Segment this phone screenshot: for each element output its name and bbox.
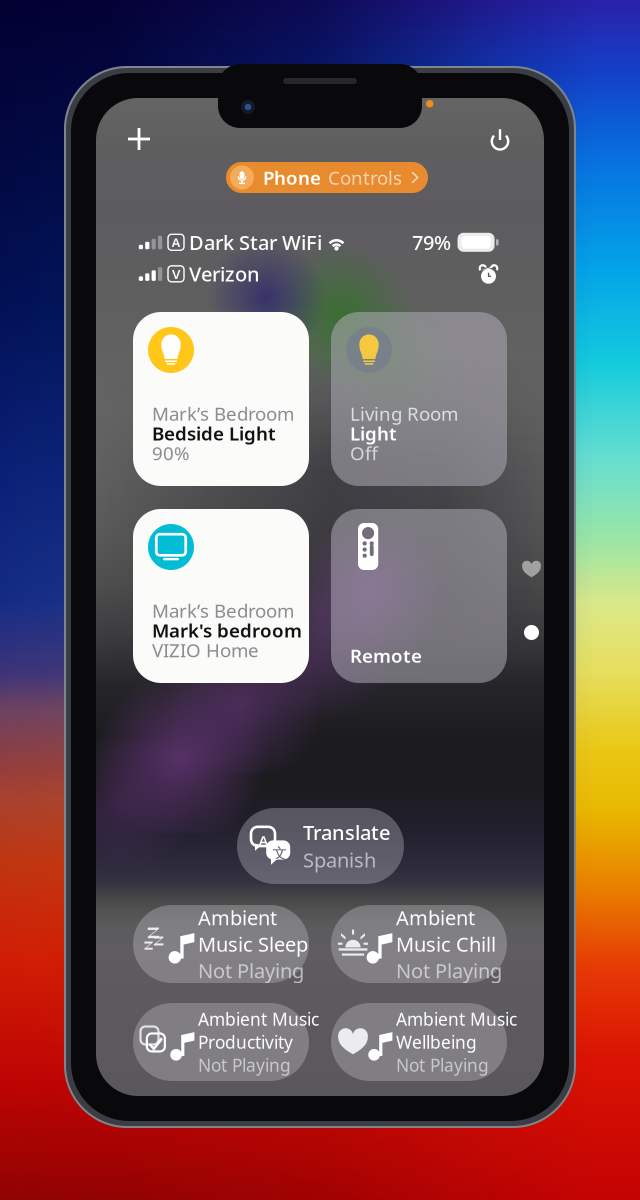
- staticText: Music Chill: [396, 931, 496, 957]
- staticText: Not Playing: [198, 957, 304, 984]
- staticText: 90%: [152, 441, 190, 465]
- staticText: Ambient: [198, 904, 277, 931]
- staticText: Bedside Light: [152, 421, 276, 446]
- button[interactable]: Remote: [331, 509, 507, 683]
- staticText: Mark’s Bedroom: [152, 401, 294, 426]
- staticText: Not Playing: [396, 957, 502, 984]
- staticText: Spanish: [303, 846, 376, 873]
- staticText: A: [259, 831, 269, 850]
- staticText: Light: [350, 421, 397, 446]
- staticText: 79%: [412, 229, 451, 256]
- staticText: Off: [350, 441, 378, 465]
- button[interactable]: Mark’s Bedroom: [133, 312, 309, 486]
- staticText: Phone: [263, 165, 321, 190]
- button[interactable]: A: [237, 808, 404, 884]
- staticText: Ambient Music: [396, 1007, 517, 1030]
- staticText: Dark Star WiFi: [189, 229, 322, 256]
- staticText: A: [171, 233, 180, 251]
- staticText: Music Sleep: [198, 931, 308, 957]
- staticText: VIZIO Home: [152, 638, 259, 662]
- staticText: Translate: [303, 819, 390, 845]
- staticText: Productivity: [198, 1030, 293, 1053]
- staticText: Not Playing: [198, 1053, 291, 1076]
- button[interactable]: Add a control: [117, 117, 161, 161]
- staticText: Verizon: [189, 261, 260, 287]
- staticText: Ambient Music: [198, 1007, 319, 1030]
- button[interactable]: Power off: [478, 118, 522, 162]
- button[interactable]: Phone: [226, 162, 428, 193]
- staticText: Mark's bedroom: [152, 618, 302, 643]
- staticText: Wellbeing: [396, 1030, 477, 1053]
- staticText: Not Playing: [396, 1053, 489, 1076]
- button[interactable]: Mark’s Bedroom: [133, 509, 309, 683]
- staticText: Mark’s Bedroom: [152, 598, 294, 623]
- button[interactable]: Living Room: [331, 312, 507, 486]
- button[interactable]: Ambient Music: [331, 1003, 507, 1081]
- button[interactable]: Ambient: [331, 905, 507, 983]
- staticText: Ambient: [396, 904, 475, 931]
- staticText: V: [172, 265, 180, 283]
- staticText: 文: [273, 844, 288, 862]
- button[interactable]: Ambient: [133, 905, 309, 983]
- button[interactable]: Ambient Music: [133, 1003, 309, 1081]
- staticText: Living Room: [350, 401, 458, 426]
- staticText: Controls: [328, 165, 402, 190]
- staticText: Remote: [350, 643, 422, 668]
